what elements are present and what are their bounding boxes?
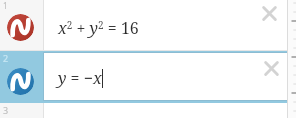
staticText: x2 + y2 = 16 bbox=[58, 17, 139, 39]
button[interactable]: 3 bbox=[0, 103, 296, 118]
button[interactable]: Expression 1 controls bbox=[0, 0, 43, 51]
button[interactable]: Delete expression 1 bbox=[259, 3, 280, 24]
button[interactable]: Expression 2 controls bbox=[0, 51, 296, 103]
button[interactable]: Toggle graph 2 bbox=[7, 68, 34, 95]
staticText: 2 bbox=[3, 52, 9, 64]
staticText: y = −x bbox=[58, 67, 102, 89]
button[interactable]: Toggle graph 1 bbox=[7, 14, 34, 41]
button[interactable]: Expression 1 controls bbox=[0, 0, 296, 51]
staticText: 3 bbox=[3, 104, 9, 116]
button[interactable]: Delete expression 2 bbox=[261, 58, 282, 79]
button[interactable]: Expression 2 controls bbox=[0, 51, 43, 103]
button[interactable]: y = −x bbox=[43, 52, 296, 101]
staticText: 1 bbox=[3, 0, 8, 11]
